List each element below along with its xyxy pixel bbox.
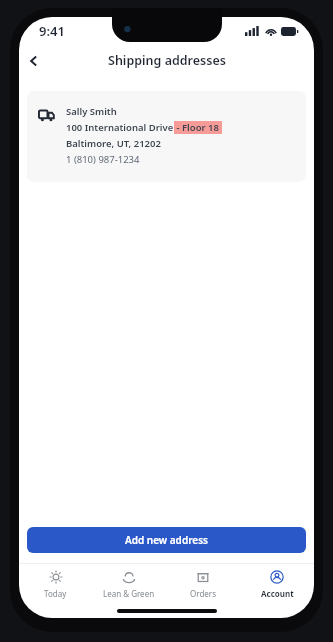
staticText: Lean & Green [103,588,155,599]
staticText: 1 (810) 987-1234 [66,153,140,166]
staticText: Shipping addresses [108,52,226,69]
button[interactable]: Lean & Green [92,564,166,604]
staticText: Baltimore, UT, 21202 [66,137,161,150]
button[interactable]: Account [240,564,314,604]
staticText: Account [261,588,294,599]
staticText: 100 International Drive [66,121,174,134]
button[interactable]: Today [19,564,92,604]
staticText: Add new address [125,533,208,547]
button[interactable]: Add new address [27,527,306,553]
staticText: Today [44,588,67,599]
staticText: - Floor 18 [174,121,222,134]
button[interactable]: Back [19,46,49,76]
button[interactable]: Orders [166,564,240,604]
staticText: Orders [190,588,216,599]
staticText: 9:41 [39,22,65,40]
staticText: Sally Smith [66,105,117,118]
button[interactable]: Sally Smith [27,91,306,182]
